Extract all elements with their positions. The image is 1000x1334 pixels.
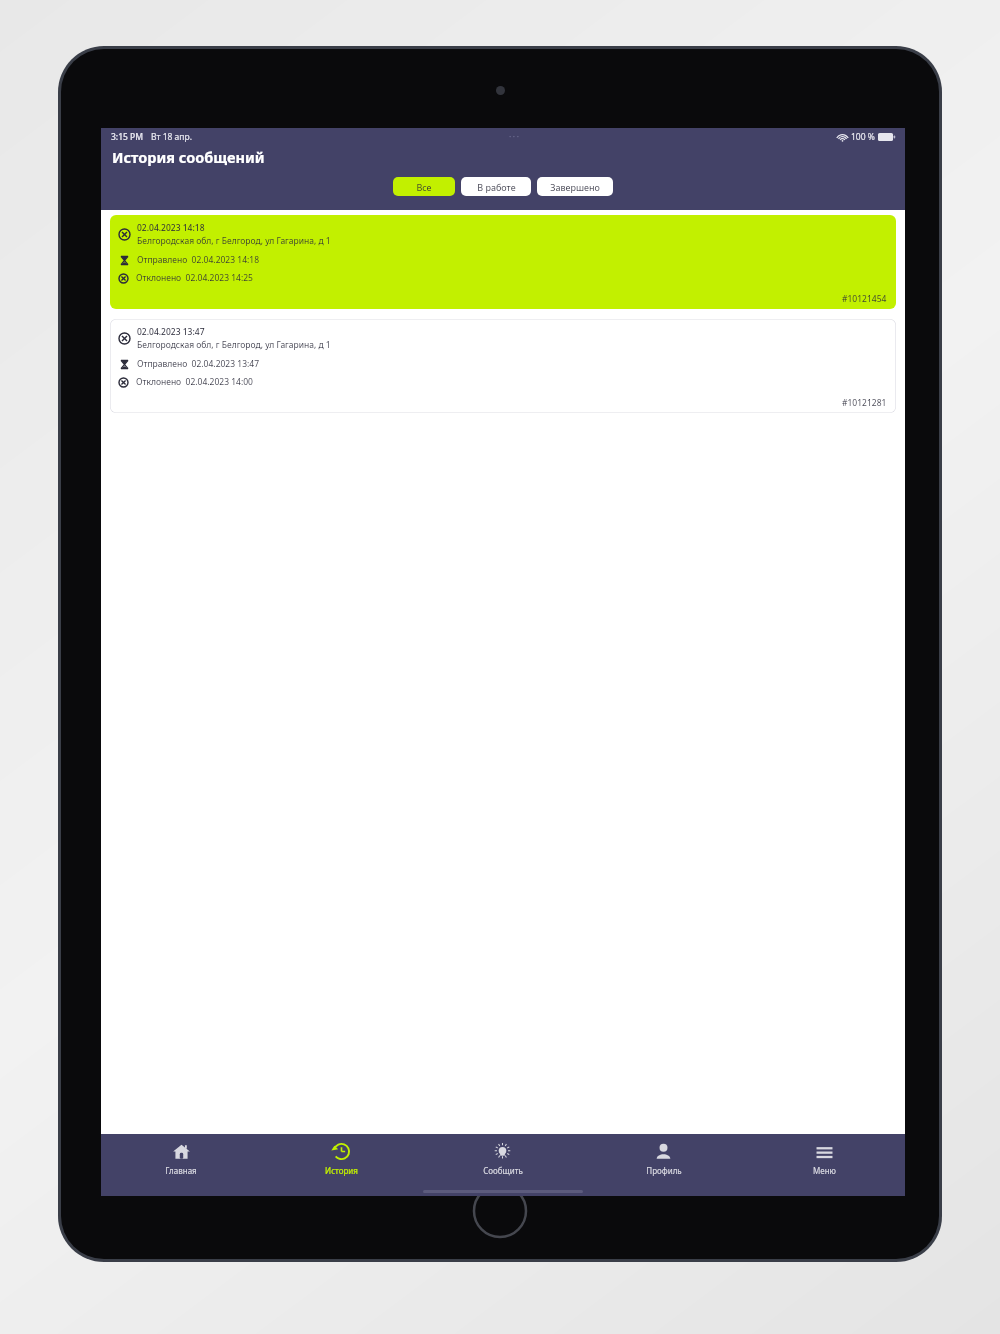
button[interactable]: Завершено — [537, 177, 613, 196]
button[interactable]: Все — [393, 177, 455, 196]
button[interactable]: В работе — [461, 177, 531, 196]
staticText: Сообщить — [483, 1165, 523, 1176]
staticText: Все — [416, 181, 432, 193]
staticText: • • • — [509, 133, 519, 141]
staticText: Отклонено 02.04.2023 14:25 — [136, 272, 253, 284]
button[interactable]: Меню — [744, 1142, 905, 1196]
staticText: 3:15 PM — [111, 131, 144, 143]
staticText: 02.04.2023 13:47 — [137, 326, 205, 338]
button[interactable]: Главная — [101, 1142, 261, 1196]
staticText: Отправлено 02.04.2023 14:18 — [137, 254, 260, 266]
button[interactable]: 02.04.2023 14:18 — [110, 215, 896, 309]
staticText: Отклонено 02.04.2023 14:00 — [136, 376, 253, 388]
button[interactable]: Профиль — [583, 1142, 744, 1196]
staticText: Белгородская обл, г Белгород, ул Гагарин… — [137, 339, 331, 351]
button[interactable]: 02.04.2023 13:47 — [110, 319, 896, 413]
button[interactable]: Сообщить — [422, 1142, 583, 1196]
staticText: 02.04.2023 14:18 — [137, 222, 205, 234]
staticText: Белгородская обл, г Белгород, ул Гагарин… — [137, 235, 331, 247]
staticText: 100 % — [851, 131, 875, 143]
staticText: Профиль — [646, 1165, 682, 1176]
staticText: Завершено — [550, 181, 600, 193]
staticText: В работе — [477, 181, 516, 193]
staticText: Главная — [165, 1165, 197, 1176]
staticText: История сообщений — [112, 147, 265, 167]
staticText: Вт 18 апр. — [151, 131, 192, 143]
staticText: История — [325, 1165, 358, 1176]
button[interactable]: История — [261, 1142, 422, 1196]
staticText: Отправлено 02.04.2023 13:47 — [137, 358, 260, 370]
staticText: #10121281 — [842, 397, 887, 409]
staticText: #10121454 — [842, 293, 887, 305]
staticText: Меню — [813, 1165, 836, 1176]
